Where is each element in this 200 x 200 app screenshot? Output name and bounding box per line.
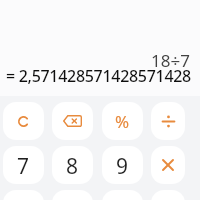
- button[interactable]: 8: [52, 146, 93, 184]
- staticText: %: [115, 110, 130, 133]
- button[interactable]: [52, 102, 93, 140]
- button[interactable]: [52, 190, 93, 200]
- staticText: 18÷7: [151, 49, 190, 72]
- button[interactable]: 9: [102, 146, 143, 184]
- staticText: 9: [116, 152, 129, 181]
- button[interactable]: [102, 190, 143, 200]
- button[interactable]: %: [102, 102, 143, 140]
- staticText: 7: [17, 152, 30, 181]
- button[interactable]: 7: [3, 146, 44, 184]
- button[interactable]: [151, 102, 185, 140]
- staticText: = 2,571428571428571428: [6, 65, 191, 87]
- button[interactable]: [3, 190, 44, 200]
- staticText: 8: [66, 152, 79, 181]
- button[interactable]: [151, 146, 185, 184]
- button[interactable]: [3, 102, 44, 140]
- button[interactable]: [151, 190, 185, 200]
